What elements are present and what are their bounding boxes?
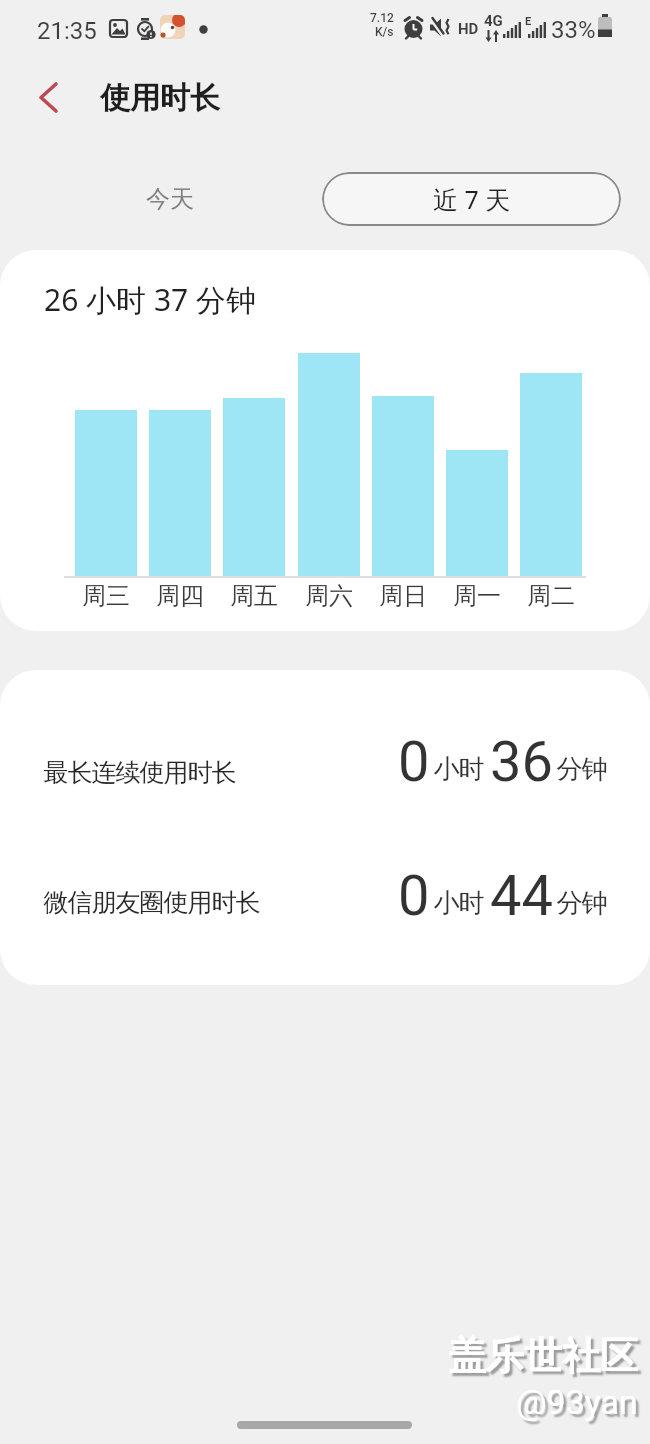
staticText: 周四 (156, 581, 204, 611)
staticText: 7.12 (370, 11, 394, 25)
staticText: 周三 (82, 581, 130, 611)
staticText: @93yan (516, 1382, 638, 1422)
staticText: 使用时长 (100, 79, 220, 117)
staticText: 0 (398, 863, 430, 929)
staticText: K/s (375, 25, 394, 39)
staticText: 周五 (230, 581, 278, 611)
button[interactable]: 近 7 天 (322, 172, 621, 226)
staticText: 21:35 (37, 17, 97, 41)
button[interactable]: 今天 (120, 177, 220, 220)
staticText: 近 7 天 (433, 182, 511, 216)
staticText: 微信朋友圈使用时长 (44, 887, 260, 918)
staticText: 今天 (146, 184, 194, 214)
staticText: 周日 (379, 581, 427, 611)
staticText: 小时 (434, 753, 484, 786)
staticText: E (525, 15, 532, 27)
staticText: HD (458, 20, 479, 36)
staticText: 周二 (527, 581, 575, 611)
staticText: 36 (490, 729, 553, 795)
staticText: 0 (398, 729, 430, 795)
staticText: 最长连续使用时长 (44, 757, 236, 788)
staticText: 分钟 (557, 753, 607, 786)
staticText: 分钟 (557, 887, 607, 920)
staticText: 26 小时 37 分钟 (44, 279, 257, 320)
staticText: 4G (484, 12, 503, 28)
staticText: 小时 (434, 887, 484, 920)
staticText: 周一 (453, 581, 501, 611)
staticText: 盖乐世社区 (448, 1332, 638, 1380)
staticText: 33% (551, 16, 596, 40)
staticText: 44 (490, 863, 553, 929)
staticText: 周六 (305, 581, 353, 611)
button[interactable] (30, 78, 66, 118)
